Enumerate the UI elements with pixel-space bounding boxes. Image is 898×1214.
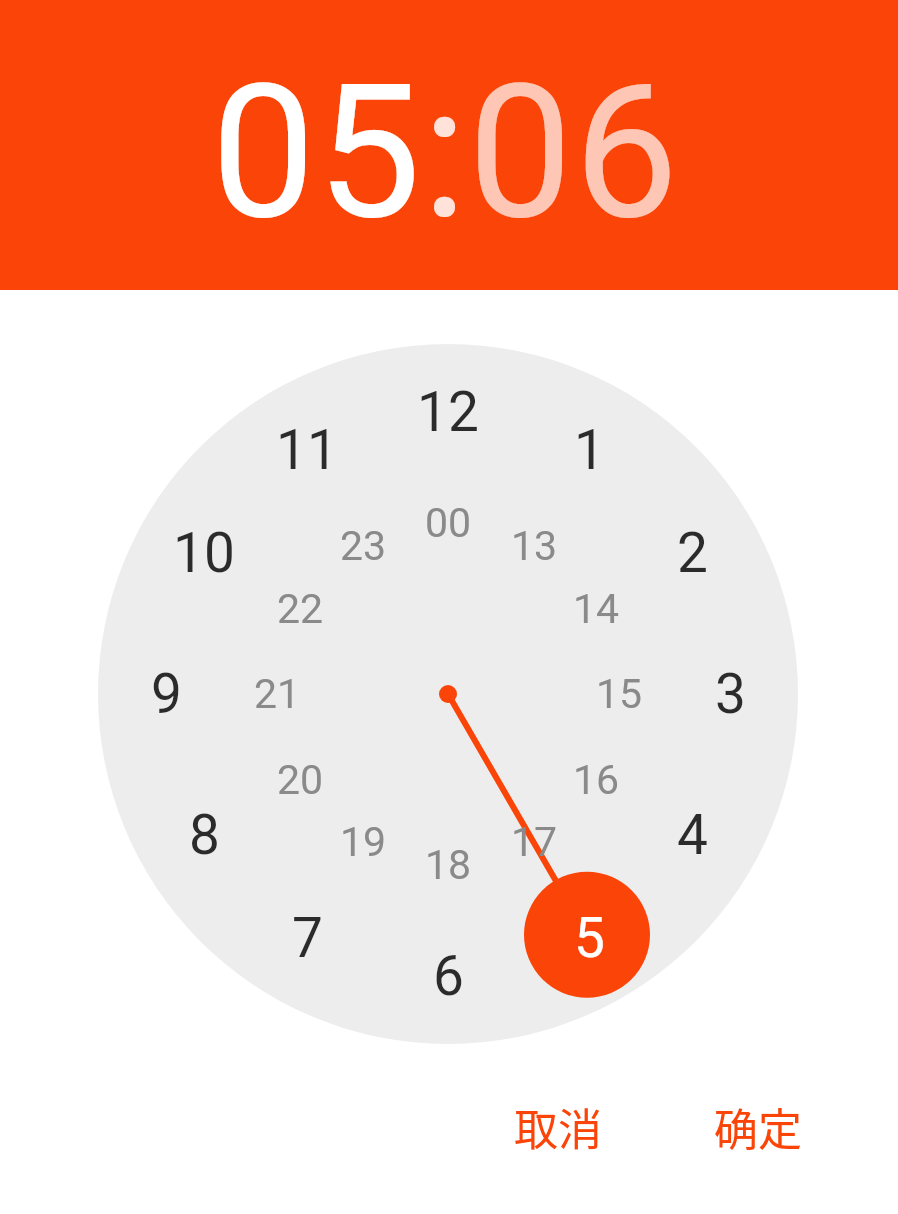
staticText: 8 [189,803,220,867]
button[interactable]: 20 [240,720,360,840]
button[interactable]: 12 [388,352,508,472]
staticText: 17 [511,818,558,866]
button[interactable]: 确定 [668,1082,848,1172]
button[interactable]: 15 [559,634,679,754]
staticText: 1 [574,418,605,482]
staticText: 7 [292,906,323,970]
button[interactable]: 10 [144,493,264,613]
staticText: 12 [417,380,479,444]
button[interactable]: 8 [144,775,264,895]
button[interactable]: 13 [474,486,594,606]
button[interactable]: 22 [240,549,360,669]
staticText: 2 [677,521,708,585]
staticText: 15 [596,670,643,718]
button[interactable]: 05:06 [0,0,898,290]
staticText: 5 [574,906,605,970]
staticText: 22 [277,585,324,633]
staticText: 19 [340,818,387,866]
button[interactable]: 3 [670,634,790,754]
button[interactable]: 2 [632,493,752,613]
staticText: 18 [425,841,472,889]
staticText: 13 [511,522,558,570]
button[interactable]: 18 [388,805,508,925]
button[interactable]: 5 [529,878,649,998]
button[interactable]: 23 [303,486,423,606]
button[interactable]: 17 [474,782,594,902]
staticText: 16 [573,756,620,804]
staticText: 20 [277,756,324,804]
staticText: 14 [573,585,620,633]
button[interactable]: 7 [247,878,367,998]
button[interactable]: 16 [536,720,656,840]
button[interactable]: 21 [217,634,337,754]
staticText: 21 [254,670,301,718]
button[interactable]: 19 [303,782,423,902]
button[interactable]: 1 [529,390,649,510]
staticText: 11 [276,418,338,482]
staticText: 05:06 [211,43,680,261]
staticText: 确定 [714,1095,802,1159]
staticText: 00 [425,499,472,547]
staticText: 10 [173,521,235,585]
button[interactable]: 00 [388,463,508,583]
button[interactable]: 取消 [468,1082,648,1172]
button[interactable]: 4 [632,775,752,895]
staticText: 取消 [514,1095,602,1159]
button[interactable]: 11 [247,390,367,510]
staticText: 6 [433,944,464,1008]
button[interactable]: 9 [106,634,226,754]
staticText: 4 [677,803,708,867]
button[interactable]: 14 [536,549,656,669]
staticText: 9 [151,662,182,726]
staticText: 3 [715,662,746,726]
button[interactable]: 6 [388,916,508,1036]
staticText: 23 [340,522,387,570]
